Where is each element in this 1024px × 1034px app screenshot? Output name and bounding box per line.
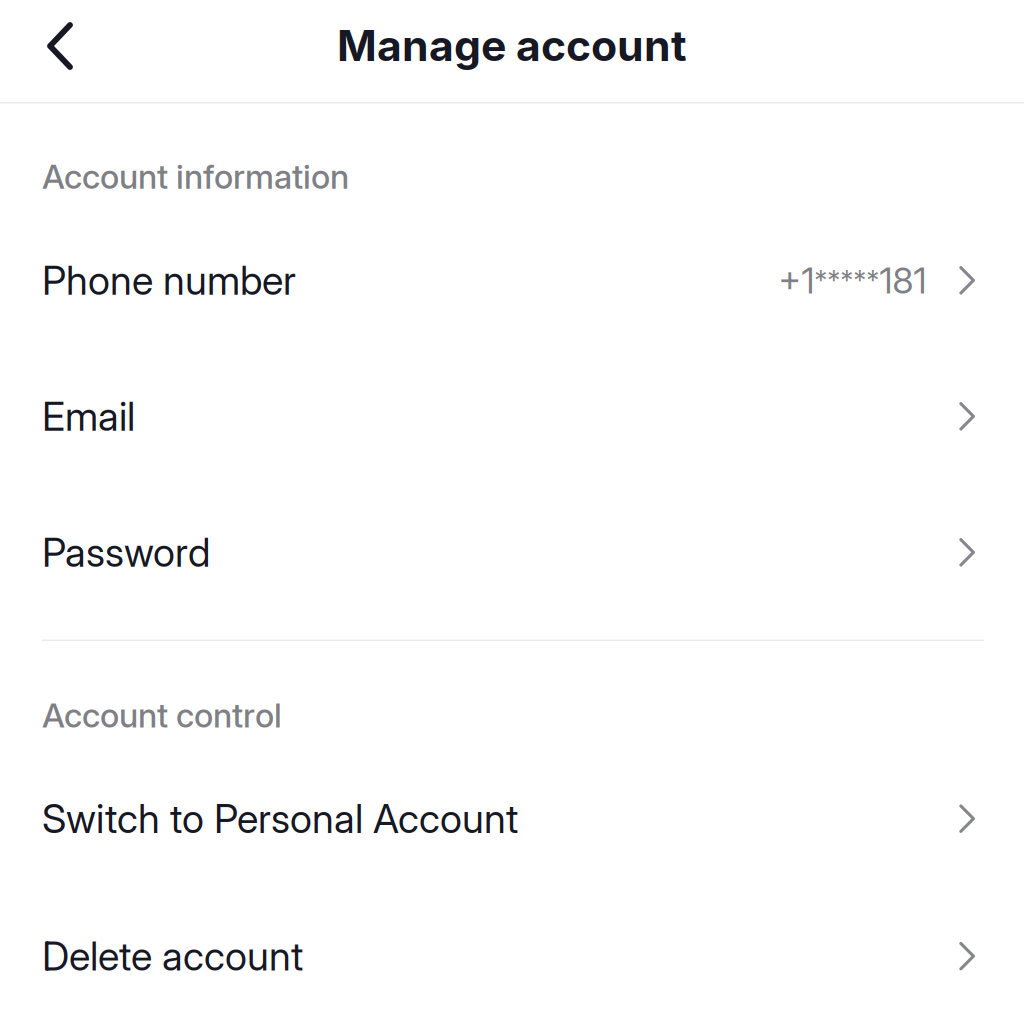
staticText: Switch to Personal Account — [42, 795, 518, 842]
staticText: Account control — [42, 695, 282, 736]
staticText: +1 — [778, 259, 814, 302]
staticText: Delete account — [42, 932, 303, 980]
staticText: 181 — [879, 259, 926, 302]
button[interactable]: Delete account — [0, 888, 1024, 1024]
button[interactable]: Back — [28, 15, 92, 87]
staticText: ***** — [814, 264, 879, 296]
staticText: Phone number — [42, 256, 296, 304]
button[interactable]: Switch to Personal Account — [0, 749, 1024, 888]
staticText: Manage account — [337, 20, 687, 71]
button[interactable]: Password — [0, 484, 1024, 620]
button[interactable]: Phone number — [0, 212, 1024, 348]
staticText: Email — [42, 392, 135, 440]
staticText: Account information — [42, 156, 349, 197]
staticText: Password — [42, 528, 210, 576]
button[interactable]: Email — [0, 348, 1024, 484]
